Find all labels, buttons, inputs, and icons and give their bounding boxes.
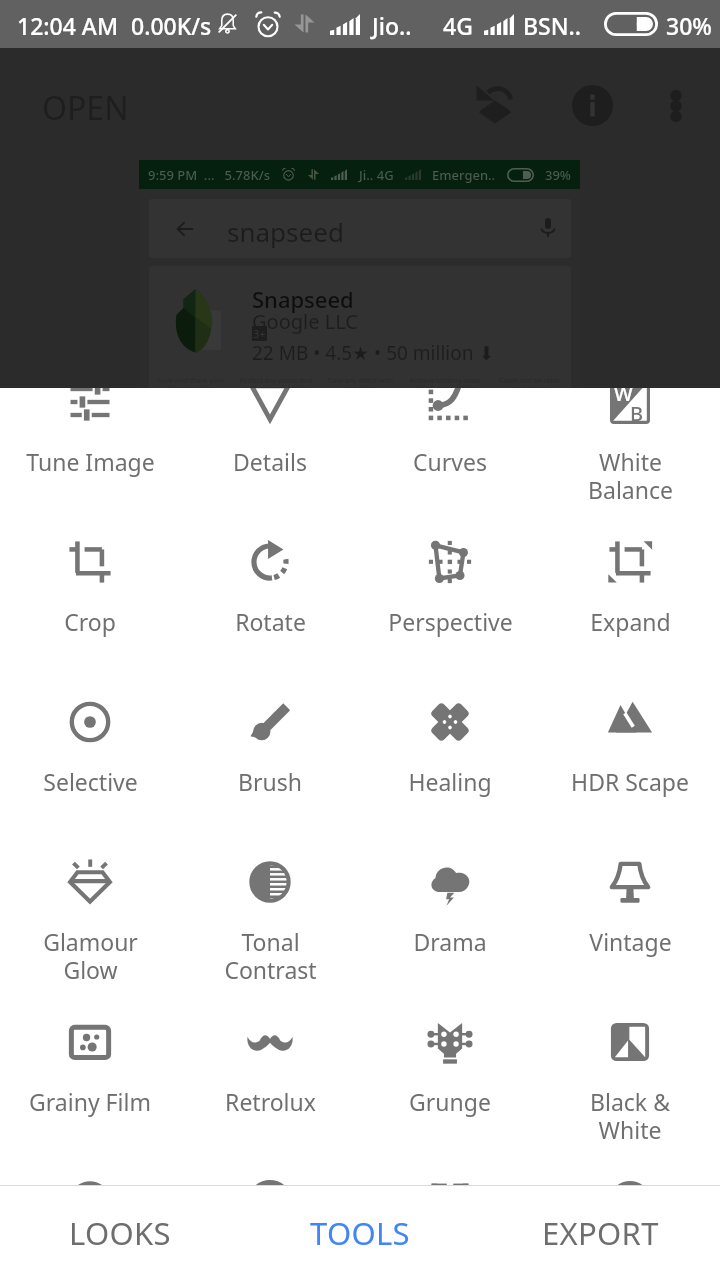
staticText: Grunge [409, 1086, 491, 1117]
button[interactable]: Retrolux [180, 964, 360, 1124]
button[interactable]: Grunge [360, 964, 540, 1124]
staticText: 3+ [253, 326, 266, 341]
staticText: Emergen.. [432, 166, 496, 184]
staticText: 39% [545, 166, 571, 184]
button[interactable]: Vignette [180, 1124, 360, 1185]
staticText: 12:04 AM [17, 10, 119, 41]
staticText: Perfect any photo first with powerful to… [238, 376, 314, 393]
staticText: Catch and be ratio your photo [491, 376, 567, 393]
button[interactable]: Curves [360, 388, 540, 484]
button[interactable]: Tonal Contrast [180, 804, 360, 964]
staticText: Grainy Film [29, 1086, 151, 1117]
staticText: Ji.. 4G [359, 166, 394, 184]
staticText: LOOKS [69, 1212, 171, 1254]
staticText: Achieve striking looks with Curves, Whit… [407, 376, 483, 401]
staticText: Jio.. [372, 10, 412, 41]
staticText: OPEN [42, 86, 129, 130]
button[interactable]: Rotate [180, 484, 360, 644]
staticText: snapseed [227, 214, 344, 249]
staticText: 22 MB • 4.5★ • 50 million ⬇ [252, 340, 495, 366]
staticText: Selective [43, 766, 138, 797]
button[interactable]: Selective [0, 644, 180, 804]
button[interactable]: Brush [180, 644, 360, 804]
button[interactable]: Double Exposure [360, 1124, 540, 1185]
button[interactable]: Grainy Film [0, 964, 180, 1124]
button[interactable]: Vintage [540, 804, 720, 964]
button[interactable]: Black & White [540, 964, 720, 1124]
button[interactable]: HDR Scape [540, 644, 720, 804]
button[interactable]: Details [180, 388, 360, 484]
staticText: 4G [443, 10, 473, 41]
button[interactable]: W [540, 388, 720, 484]
button[interactable]: Lens Blur [0, 1124, 180, 1185]
button[interactable]: Drama [360, 804, 540, 964]
staticText: Glamour Glow [43, 926, 138, 986]
button[interactable]: Perspective [360, 484, 540, 644]
staticText: Tune any effect with one slider [322, 376, 398, 393]
staticText: HDR Scape [571, 766, 689, 797]
staticText: Rotate [235, 606, 306, 637]
button[interactable]: LOOKS [0, 1186, 240, 1280]
staticText: Drama [413, 926, 487, 957]
button[interactable]: Expand [540, 484, 720, 644]
staticText: Retrolux [225, 1086, 316, 1117]
button[interactable]: Glamour Glow [0, 804, 180, 964]
staticText: BSN.. [523, 10, 582, 41]
staticText: Vintage [589, 926, 672, 957]
staticText: 0.00K/s [131, 10, 212, 41]
button[interactable]: Healing [360, 644, 540, 804]
staticText: Brush [238, 766, 302, 797]
staticText: Expand [590, 606, 671, 637]
staticText: B [630, 400, 644, 424]
staticText: EXPORT [542, 1212, 659, 1254]
staticText: 9:59 PM ... 5.78K/s [148, 166, 270, 184]
staticText: Tonal Contrast [224, 926, 317, 986]
staticText: Details [233, 446, 307, 477]
button[interactable]: Undo / view edit stack [455, 63, 535, 143]
button[interactable]: Text [540, 1124, 720, 1185]
staticText: W [614, 388, 633, 407]
staticText: Crop [64, 606, 116, 637]
staticText: Save and share your favorite looks [153, 376, 229, 393]
button[interactable]: Info [552, 65, 632, 145]
staticText: Black & White [590, 1086, 670, 1146]
button[interactable]: Tune Image [0, 388, 180, 484]
button[interactable]: TOOLS [240, 1186, 480, 1280]
staticText: TOOLS [310, 1212, 410, 1254]
staticText: Perspective [388, 606, 513, 637]
staticText: Healing [408, 766, 492, 797]
staticText: Google LLC [252, 308, 358, 335]
staticText: Curves [413, 446, 487, 477]
staticText: 30% [666, 10, 712, 41]
button[interactable]: EXPORT [480, 1186, 720, 1280]
staticText: Snapseed [252, 284, 354, 314]
button[interactable]: Crop [0, 484, 180, 644]
staticText: Tune Image [26, 446, 155, 477]
staticText: White Balance [588, 446, 673, 506]
